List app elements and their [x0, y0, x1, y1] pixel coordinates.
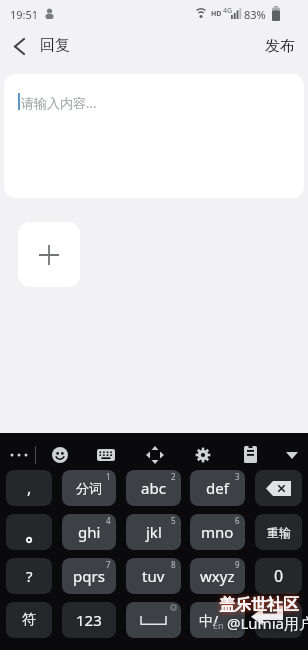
- staticText: 0: [274, 565, 284, 587]
- button[interactable]: 符: [6, 602, 52, 638]
- staticText: wxyz: [200, 566, 235, 586]
- staticText: tuv: [142, 566, 165, 586]
- button[interactable]: [126, 602, 181, 638]
- staticText: 1: [106, 471, 111, 482]
- button[interactable]: [6, 514, 52, 550]
- button[interactable]: [195, 447, 211, 463]
- staticText: ,: [27, 477, 32, 499]
- button[interactable]: [244, 446, 257, 463]
- staticText: 83%: [244, 7, 266, 22]
- button[interactable]: pqrs: [62, 558, 116, 594]
- button[interactable]: [3, 30, 35, 62]
- staticText: 2: [171, 471, 176, 482]
- button[interactable]: ,: [6, 470, 52, 506]
- button[interactable]: [255, 602, 302, 638]
- staticText: HD: [211, 9, 222, 19]
- staticText: jkl: [146, 522, 162, 542]
- button[interactable]: tuv: [126, 558, 181, 594]
- button[interactable]: 123: [62, 602, 116, 638]
- staticText: 符: [22, 611, 36, 629]
- button[interactable]: 重输: [255, 514, 302, 550]
- staticText: 回复: [40, 36, 70, 55]
- staticText: 5: [171, 515, 176, 526]
- button[interactable]: 分词: [62, 470, 116, 506]
- button[interactable]: [97, 449, 115, 461]
- staticText: def: [206, 478, 229, 498]
- button[interactable]: ghi: [62, 514, 116, 550]
- staticText: ghi: [78, 522, 101, 542]
- button[interactable]: def: [190, 470, 245, 506]
- button[interactable]: abc: [126, 470, 181, 506]
- staticText: 8: [171, 559, 176, 570]
- staticText: 盖乐世社区: [219, 595, 299, 615]
- staticText: 请输入内容...: [21, 94, 97, 112]
- button[interactable]: ?: [6, 558, 52, 594]
- staticText: 19:51: [10, 7, 39, 22]
- staticText: mno: [201, 522, 234, 542]
- staticText: 123: [76, 610, 102, 630]
- button[interactable]: 中/: [190, 602, 245, 638]
- staticText: 3: [235, 471, 240, 482]
- button[interactable]: [52, 447, 68, 463]
- staticText: 4G: [223, 6, 233, 16]
- staticText: ?: [26, 566, 33, 586]
- staticText: En: [213, 619, 224, 631]
- button[interactable]: wxyz: [190, 558, 245, 594]
- button[interactable]: [286, 452, 298, 459]
- button[interactable]: [146, 446, 164, 464]
- staticText: 中/: [199, 611, 219, 630]
- staticText: abc: [141, 478, 166, 498]
- button[interactable]: jkl: [126, 514, 181, 550]
- staticText: 6: [235, 515, 240, 526]
- staticText: 分词: [76, 480, 102, 496]
- staticText: 9: [235, 559, 240, 570]
- staticText: 发布: [265, 37, 295, 56]
- button[interactable]: 发布: [265, 37, 295, 56]
- button[interactable]: [255, 470, 302, 506]
- staticText: 4: [106, 515, 111, 526]
- button[interactable]: 0: [255, 558, 302, 594]
- staticText: 重输: [267, 525, 291, 540]
- button[interactable]: mno: [190, 514, 245, 550]
- staticText: 7: [106, 559, 111, 570]
- staticText: @Lumia用户: [227, 613, 308, 633]
- button[interactable]: 请输入内容...: [4, 74, 304, 198]
- staticText: pqrs: [73, 566, 105, 586]
- button[interactable]: [18, 222, 80, 287]
